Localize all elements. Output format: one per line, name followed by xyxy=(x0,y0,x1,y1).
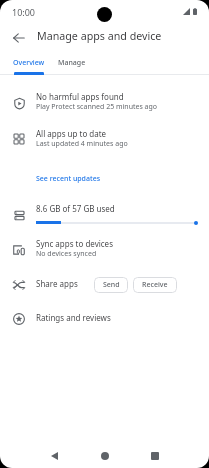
button[interactable]: Overview xyxy=(7,52,51,74)
button[interactable]: Send xyxy=(94,277,128,293)
button[interactable]: Home xyxy=(99,450,111,462)
button[interactable]: See recent updates xyxy=(0,169,209,189)
staticText: Ratings and reviews xyxy=(36,312,111,323)
button[interactable]: Recent apps xyxy=(149,450,161,462)
staticText: 10:00 xyxy=(12,6,36,18)
button[interactable]: Manage xyxy=(54,52,90,74)
button[interactable]: No harmful apps found xyxy=(0,86,209,120)
button[interactable]: Ratings and reviews xyxy=(0,304,209,332)
button[interactable]: All apps up to date xyxy=(0,123,209,157)
button[interactable]: Receive xyxy=(133,277,177,293)
staticText: No devices synced xyxy=(36,249,97,259)
staticText: No harmful apps found xyxy=(36,91,124,102)
staticText: Share apps xyxy=(36,278,78,289)
staticText: Play Protect scanned 25 minutes ago xyxy=(36,102,158,112)
button[interactable]: Back xyxy=(48,450,60,462)
staticText: Receive xyxy=(142,280,168,290)
button[interactable]: 8.6 GB of 57 GB used xyxy=(0,198,209,232)
staticText: Manage apps and device xyxy=(37,29,162,44)
staticText: 8.6 GB of 57 GB used xyxy=(36,203,115,214)
staticText: All apps up to date xyxy=(36,128,107,139)
button[interactable]: Sync apps to devices xyxy=(0,234,209,268)
staticText: Send xyxy=(103,280,120,290)
staticText: See recent updates xyxy=(36,174,101,184)
staticText: Last updated 4 minutes ago xyxy=(36,139,128,149)
button[interactable]: Navigate up xyxy=(6,25,32,51)
staticText: Sync apps to devices xyxy=(36,238,113,249)
staticText: Manage xyxy=(58,58,86,68)
staticText: Overview xyxy=(13,58,45,68)
